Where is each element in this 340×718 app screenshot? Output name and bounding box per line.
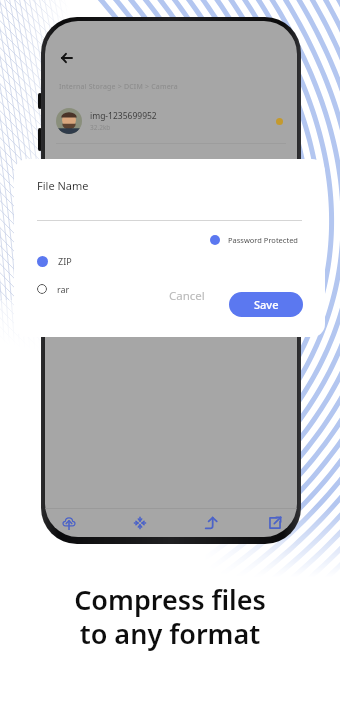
button[interactable]: Save bbox=[229, 292, 303, 317]
staticText: rar bbox=[57, 283, 70, 295]
button[interactable]: Cancel bbox=[161, 280, 213, 312]
staticText: Save bbox=[254, 297, 279, 312]
staticText: Compress files to any format bbox=[74, 581, 266, 652]
staticText: File Name bbox=[37, 178, 89, 193]
staticText: Password Protected bbox=[228, 235, 298, 245]
staticText: Cancel bbox=[169, 288, 205, 304]
staticText: Internal Storage > DCIM > Camera bbox=[59, 82, 178, 92]
button[interactable]: Share bbox=[191, 509, 231, 537]
button[interactable]: Open bbox=[255, 509, 295, 537]
staticText: ZIP bbox=[58, 255, 72, 267]
button[interactable]: rar bbox=[37, 283, 70, 295]
button[interactable]: Back bbox=[55, 47, 77, 69]
staticText: img-1235699952 bbox=[90, 110, 157, 122]
button[interactable]: img-1235699952 bbox=[45, 108, 297, 134]
staticText: 32.2kb bbox=[90, 123, 111, 132]
button[interactable]: ZIP bbox=[37, 255, 72, 267]
button[interactable]: Compress bbox=[120, 509, 160, 537]
button[interactable]: Upload bbox=[49, 509, 89, 537]
button[interactable]: Password Protected bbox=[210, 235, 298, 245]
